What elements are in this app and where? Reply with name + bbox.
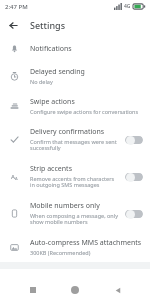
staticText: Swipe actions: [30, 97, 75, 107]
button[interactable]: Strip accents: [125, 172, 143, 182]
button[interactable]: Delayed sending: [0, 61, 150, 91]
staticText: Delivery confirmations: [30, 127, 105, 137]
staticText: Remove accents from characters in outgoi…: [30, 175, 120, 189]
staticText: Configure swipe actions for conversation…: [30, 108, 139, 115]
staticText: When composing a message, only show mobi…: [30, 212, 120, 226]
button[interactable]: Auto-compress MMS attachments: [0, 232, 150, 262]
staticText: Delayed sending: [30, 67, 85, 77]
staticText: Auto-compress MMS attachments: [30, 238, 142, 248]
staticText: 300KB (Recommended): [30, 249, 91, 256]
staticText: Settings: [30, 19, 66, 31]
button[interactable]: Mobile numbers only: [125, 209, 143, 219]
staticText: 2:47 PM: [5, 3, 28, 11]
staticText: A: [15, 176, 18, 181]
button[interactable]: Recents: [23, 280, 43, 300]
button[interactable]: Delivery confirmations: [0, 121, 150, 158]
button[interactable]: Mobile numbers only: [0, 195, 150, 232]
staticText: 4G: [124, 3, 131, 10]
button[interactable]: Swipe actions: [0, 91, 150, 121]
button[interactable]: Back: [5, 17, 21, 33]
button[interactable]: A: [0, 158, 150, 195]
staticText: Strip accents: [30, 164, 72, 174]
button[interactable]: Home: [65, 280, 85, 300]
staticText: Confirm that messages were sent successf…: [30, 138, 120, 152]
staticText: No delay: [30, 78, 53, 85]
staticText: A: [11, 173, 15, 181]
staticText: Mobile numbers only: [30, 201, 100, 211]
button[interactable]: Notifications: [0, 36, 150, 61]
staticText: Notifications: [30, 44, 72, 54]
button[interactable]: Back: [108, 280, 128, 300]
button[interactable]: Delivery confirmations: [125, 135, 143, 145]
